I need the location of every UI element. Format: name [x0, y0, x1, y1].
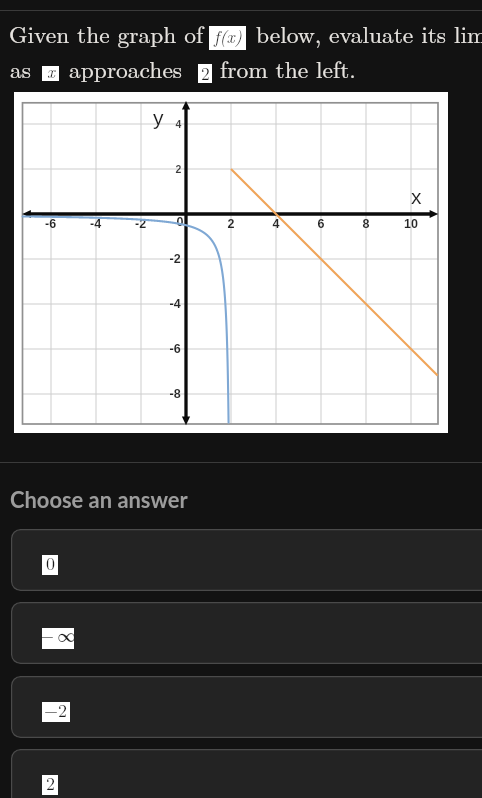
- button[interactable]: Answer negative infinity: [11, 602, 482, 664]
- staticText: Choose an answer: [10, 486, 188, 512]
- staticText: −2: [44, 697, 68, 723]
- button[interactable]: Answer 2: [11, 749, 482, 798]
- staticText: 2: [201, 60, 210, 85]
- staticText: Given the graph of: [9, 17, 204, 50]
- staticText: − ∞: [40, 622, 76, 648]
- staticText: x: [47, 59, 55, 83]
- staticText: as: [10, 52, 32, 85]
- staticText: from the left.: [220, 52, 356, 85]
- button[interactable]: Answer 0: [11, 529, 482, 591]
- staticText: f(x): [214, 23, 242, 48]
- button[interactable]: Answer negative 2: [11, 676, 482, 738]
- staticText: below, evaluate its limit: [256, 17, 482, 50]
- staticText: 0: [46, 550, 55, 576]
- staticText: 2: [46, 770, 55, 796]
- staticText: approaches: [69, 52, 183, 85]
